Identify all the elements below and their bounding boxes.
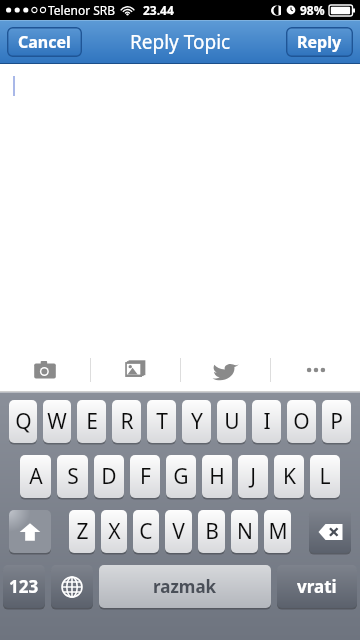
staticText: Cancel [18, 31, 71, 53]
button[interactable]: L [310, 455, 340, 498]
button[interactable]: G [166, 455, 196, 498]
staticText: K [283, 462, 296, 491]
button[interactable]: W [43, 400, 71, 443]
staticText: P [330, 407, 343, 436]
button[interactable]: F [130, 455, 160, 498]
staticText: A [29, 462, 43, 491]
staticText: L [319, 462, 331, 491]
button[interactable]: vrati [277, 565, 357, 608]
staticText: Reply Topic [130, 29, 231, 55]
staticText: vrati [297, 575, 337, 598]
button[interactable]: P [322, 400, 351, 443]
staticText: D [101, 462, 117, 491]
button[interactable]: Y [182, 400, 211, 443]
staticText: T [156, 407, 168, 436]
staticText: Reply [297, 31, 342, 53]
button[interactable]: K [274, 455, 304, 498]
staticText: N [237, 517, 253, 546]
button[interactable]: Q [9, 400, 37, 443]
button[interactable]: Cancel [7, 27, 82, 57]
staticText: C [139, 517, 153, 546]
button[interactable]: H [202, 455, 232, 498]
staticText: G [173, 462, 189, 491]
staticText: R [120, 407, 134, 436]
staticText: 98% [300, 2, 325, 18]
button[interactable]: Camera [0, 348, 90, 392]
button[interactable]: Backspace [309, 510, 351, 553]
staticText: B [205, 517, 219, 546]
staticText: Z [76, 517, 89, 546]
staticText: V [172, 517, 185, 546]
button[interactable]: More [271, 348, 360, 392]
button[interactable]: A [20, 455, 51, 498]
button[interactable]: D [94, 455, 124, 498]
button[interactable]: Change keyboard language [51, 565, 93, 608]
staticText: E [86, 407, 98, 436]
button[interactable]: Shift [9, 510, 51, 553]
button[interactable]: N [231, 510, 258, 553]
button[interactable]: R [112, 400, 141, 443]
button[interactable]: I [252, 400, 281, 443]
button[interactable]: J [238, 455, 268, 498]
staticText: O [293, 407, 310, 436]
staticText: H [209, 462, 225, 491]
button[interactable]: Twitter [181, 348, 270, 392]
staticText: 123 [9, 575, 39, 598]
button[interactable]: razmak [99, 565, 271, 608]
button[interactable]: Photos [91, 348, 180, 392]
staticText: W [47, 407, 67, 436]
button[interactable]: U [217, 400, 246, 443]
button[interactable]: B [198, 510, 225, 553]
staticText: F [140, 462, 151, 491]
button[interactable]: M [264, 510, 291, 553]
staticText: Y [191, 407, 203, 436]
staticText: Telenor SRB [48, 2, 116, 18]
button[interactable]: O [287, 400, 316, 443]
staticText: U [224, 407, 240, 436]
button[interactable]: 123 [3, 565, 45, 608]
staticText: Q [15, 407, 32, 436]
button[interactable]: X [101, 510, 127, 553]
button[interactable]: C [133, 510, 159, 553]
staticText: razmak [153, 575, 217, 598]
button[interactable]: V [165, 510, 192, 553]
staticText: X [108, 517, 121, 546]
staticText: S [67, 462, 79, 491]
button[interactable]: Z [69, 510, 95, 553]
staticText: J [250, 462, 256, 491]
staticText: 23.44 [143, 2, 174, 18]
staticText: I [263, 407, 271, 436]
button[interactable]: E [77, 400, 106, 443]
button[interactable]: S [57, 455, 88, 498]
button[interactable]: T [147, 400, 176, 443]
staticText: M [268, 517, 288, 546]
button[interactable]: Reply [286, 27, 353, 57]
